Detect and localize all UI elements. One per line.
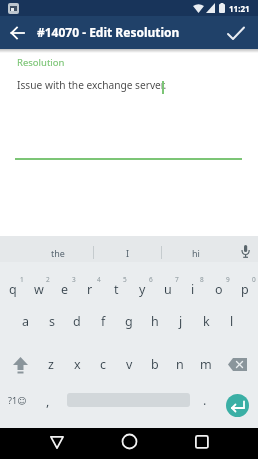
button[interactable]	[226, 394, 249, 417]
button[interactable]: 9	[217, 270, 239, 288]
button[interactable]	[224, 352, 252, 378]
staticText: .	[203, 392, 207, 409]
button[interactable]: I	[108, 243, 148, 263]
button[interactable]: f	[92, 312, 114, 330]
button[interactable]	[6, 22, 28, 44]
staticText: hi	[192, 247, 200, 259]
button[interactable]	[224, 21, 248, 45]
button[interactable]: d	[66, 312, 88, 330]
staticText: the	[51, 247, 65, 259]
staticText: #14070 - Edit Resolution	[37, 24, 180, 40]
button[interactable]: ,	[37, 392, 59, 410]
staticText: 5	[123, 275, 127, 284]
button[interactable]: y	[131, 280, 153, 298]
button[interactable]: q	[2, 280, 24, 298]
button[interactable]: 5	[114, 270, 136, 288]
staticText: y	[139, 281, 146, 298]
staticText: m	[200, 356, 212, 373]
staticText: b	[151, 356, 159, 373]
staticText: z	[48, 356, 54, 373]
staticText: 0	[252, 275, 256, 284]
staticText: 3	[72, 275, 76, 284]
button[interactable]: a	[15, 312, 37, 330]
staticText: d	[73, 313, 81, 330]
button[interactable]: .	[194, 391, 216, 409]
staticText: k	[203, 313, 210, 330]
staticText: ,	[46, 393, 50, 410]
button[interactable]	[190, 430, 212, 452]
staticText: i	[191, 281, 195, 298]
staticText: 9	[226, 275, 230, 284]
staticText: o	[215, 281, 223, 298]
button[interactable]: m	[195, 355, 217, 373]
staticText: 1	[20, 275, 24, 284]
button[interactable]: g	[118, 312, 140, 330]
staticText: w	[34, 281, 44, 298]
staticText: I	[126, 247, 130, 259]
staticText: 7	[175, 275, 179, 284]
button[interactable]	[6, 352, 34, 378]
button[interactable]: r	[79, 280, 101, 298]
button[interactable]: hi	[176, 243, 216, 263]
button[interactable]: l	[221, 312, 243, 330]
button[interactable]: s	[41, 312, 63, 330]
button[interactable]: v	[118, 355, 140, 373]
staticText: p	[241, 281, 249, 298]
button[interactable]: 0	[243, 270, 258, 288]
staticText: 2	[46, 275, 50, 284]
staticText: 4	[97, 275, 101, 284]
button[interactable]	[118, 430, 140, 452]
button[interactable]: 2	[37, 270, 59, 288]
staticText: n	[176, 356, 184, 373]
staticText: f	[101, 313, 106, 330]
staticText: e	[61, 281, 69, 298]
staticText: h	[151, 313, 159, 330]
button[interactable]: 3	[63, 270, 85, 288]
button[interactable]: c	[92, 355, 114, 373]
staticText: c	[100, 356, 107, 373]
staticText: l	[230, 313, 234, 330]
staticText: j	[179, 313, 183, 330]
staticText: a	[22, 313, 30, 330]
button[interactable]: 6	[140, 270, 162, 288]
button[interactable]: u	[157, 280, 179, 298]
staticText: 11:21	[229, 3, 250, 14]
staticText: x	[74, 356, 81, 373]
button[interactable]: h	[144, 312, 166, 330]
button[interactable]: z	[40, 355, 62, 373]
button[interactable]: x	[66, 355, 88, 373]
button[interactable]: 1	[11, 270, 33, 288]
staticText: Resolution	[17, 56, 65, 69]
staticText: 8	[200, 275, 204, 284]
button[interactable]: o	[208, 280, 230, 298]
button[interactable]: t	[105, 280, 127, 298]
button[interactable]	[46, 431, 68, 453]
button[interactable]: 4	[88, 270, 110, 288]
button[interactable]: 8	[191, 270, 213, 288]
staticText: 6	[149, 275, 153, 284]
button[interactable]: ?1☺	[8, 394, 27, 406]
button[interactable]: i	[182, 280, 204, 298]
staticText: q	[9, 281, 17, 298]
staticText: g	[125, 313, 133, 330]
button[interactable]: b	[144, 355, 166, 373]
button[interactable]: the	[38, 243, 78, 263]
button[interactable]: e	[54, 280, 76, 298]
staticText: Issue with the exchange server.	[17, 78, 167, 92]
button[interactable]: p	[234, 280, 256, 298]
staticText: r	[87, 281, 93, 298]
staticText: u	[164, 281, 172, 298]
staticText: t	[114, 281, 119, 298]
button[interactable]: n	[169, 355, 191, 373]
staticText: s	[49, 313, 55, 330]
button[interactable]: j	[170, 312, 192, 330]
button[interactable]: w	[28, 280, 50, 298]
button[interactable]: k	[195, 312, 217, 330]
button[interactable]: 7	[166, 270, 188, 288]
staticText: v	[126, 356, 133, 373]
